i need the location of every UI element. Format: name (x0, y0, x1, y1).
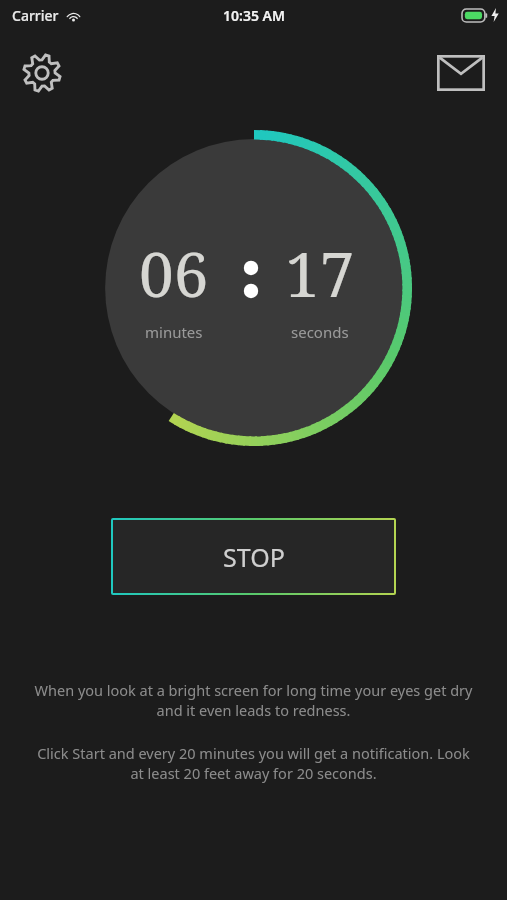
staticText: minutes (145, 322, 203, 342)
staticText: Carrier (12, 6, 59, 25)
staticText: When you look at a bright screen for lon… (30, 680, 477, 721)
staticText: seconds (291, 322, 349, 342)
button[interactable]: Mail (433, 45, 489, 101)
staticText: Click Start and every 20 minutes you wil… (30, 743, 477, 784)
staticText: 06 (139, 231, 209, 315)
button[interactable]: Settings (14, 45, 70, 101)
button[interactable]: STOP (113, 520, 394, 593)
staticText: 10:35 AM (223, 6, 285, 25)
staticText: 17 (285, 231, 355, 315)
staticText: STOP (223, 540, 285, 574)
